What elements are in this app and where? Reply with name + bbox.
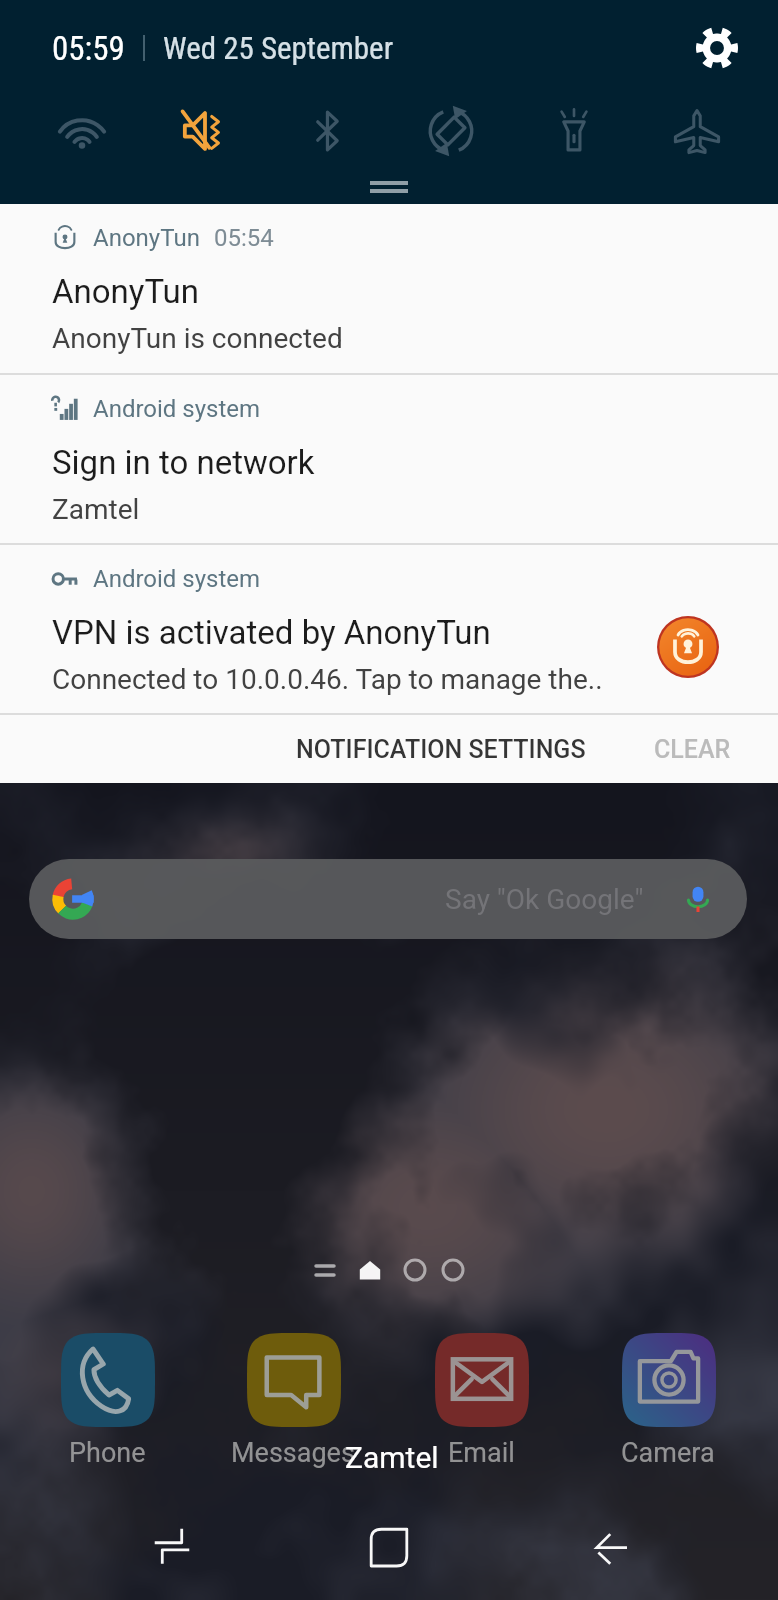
staticText: Zamtel xyxy=(52,493,140,526)
staticText: 05:54 xyxy=(214,224,274,252)
staticText: Camera xyxy=(621,1437,715,1469)
staticText: Connected to 10.0.0.46. Tap to manage th… xyxy=(52,663,603,696)
button[interactable]: Phone xyxy=(61,1333,155,1427)
button[interactable]: NOTIFICATION SETTINGS xyxy=(282,719,600,780)
button[interactable]: Back xyxy=(557,1496,657,1596)
staticText: AnonyTun is connected xyxy=(52,322,343,355)
button[interactable]: CLEAR xyxy=(640,719,745,780)
staticText: Messages xyxy=(231,1437,355,1469)
button[interactable]: Auto rotate xyxy=(389,96,512,166)
staticText: Say "Ok Google" xyxy=(445,883,644,916)
button[interactable]: Home xyxy=(339,1496,439,1596)
button[interactable]: Messages xyxy=(247,1333,341,1427)
staticText: AnonyTun xyxy=(93,224,200,252)
button[interactable]: Say "Ok Google" xyxy=(29,859,747,939)
button[interactable]: Settings xyxy=(686,17,748,79)
staticText: Phone xyxy=(69,1437,146,1469)
staticText: Zamtel xyxy=(345,1440,439,1475)
staticText: Sign in to network xyxy=(52,443,315,482)
button[interactable]: Bluetooth xyxy=(266,96,389,166)
button[interactable]: Camera xyxy=(622,1333,716,1427)
button[interactable]: Android system xyxy=(0,545,778,713)
staticText: VPN is activated by AnonyTun xyxy=(52,613,491,652)
button[interactable]: Airplane mode xyxy=(635,96,758,166)
staticText: Wed 25 September xyxy=(163,30,394,66)
staticText: NOTIFICATION SETTINGS xyxy=(296,735,586,764)
button[interactable]: Flashlight xyxy=(512,96,635,166)
staticText: 05:59 xyxy=(52,29,125,68)
staticText: Android system xyxy=(93,565,261,593)
staticText: AnonyTun xyxy=(52,272,199,311)
button[interactable]: Android system xyxy=(0,375,778,543)
staticText: CLEAR xyxy=(654,735,731,764)
button[interactable]: AnonyTun xyxy=(0,204,778,373)
button[interactable]: Recent apps xyxy=(122,1496,222,1596)
button[interactable]: Email xyxy=(435,1333,529,1427)
staticText: Android system xyxy=(93,395,261,423)
button[interactable]: Wi-Fi xyxy=(20,96,143,166)
button[interactable]: Mute xyxy=(143,96,266,166)
staticText: Email xyxy=(448,1437,515,1469)
